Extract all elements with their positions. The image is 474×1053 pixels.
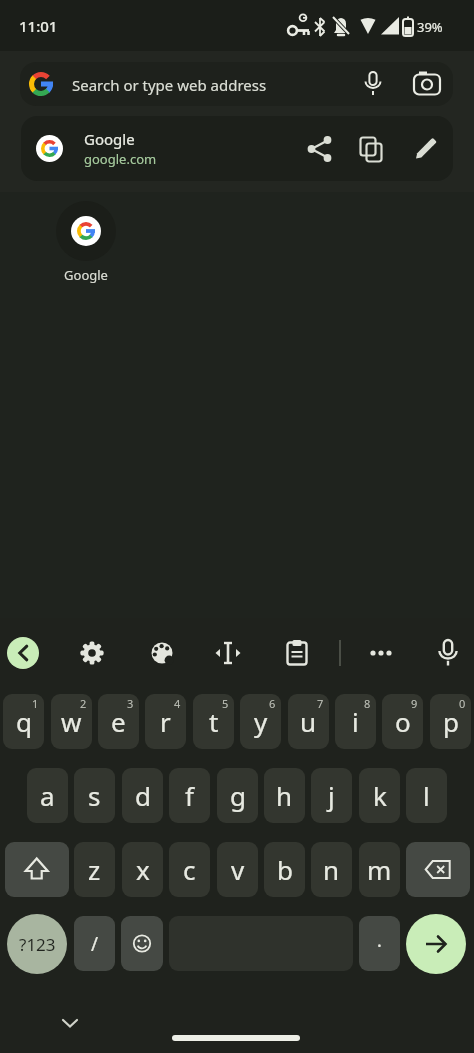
button[interactable]: z — [74, 842, 115, 897]
button[interactable]: x — [122, 842, 163, 897]
button[interactable]: b — [264, 842, 305, 897]
staticText: e — [111, 704, 126, 739]
staticText: s — [88, 778, 101, 813]
staticText: u — [300, 704, 317, 739]
staticText: c — [183, 852, 196, 887]
staticText: t — [209, 704, 219, 739]
staticText: n — [323, 852, 340, 887]
button[interactable]: Google — [21, 116, 453, 181]
staticText: 5 — [222, 696, 229, 711]
button[interactable]: y — [240, 694, 281, 749]
staticText: o — [395, 704, 411, 739]
button[interactable] — [406, 130, 444, 168]
staticText: 3 — [127, 696, 134, 711]
staticText: x — [136, 852, 150, 887]
button[interactable]: / — [74, 916, 115, 971]
button[interactable] — [56, 201, 116, 261]
button[interactable] — [407, 64, 447, 104]
button[interactable]: p — [430, 694, 471, 749]
staticText: Google — [46, 266, 126, 284]
button[interactable]: r — [145, 694, 186, 749]
button[interactable]: f — [169, 768, 210, 823]
staticText: 39% — [417, 18, 443, 36]
staticText: 1 — [32, 696, 39, 711]
button[interactable]: h — [264, 768, 305, 823]
button[interactable] — [208, 633, 248, 673]
staticText: y — [254, 704, 268, 739]
button[interactable]: g — [217, 768, 258, 823]
staticText: 9 — [411, 696, 418, 711]
staticText: w — [61, 704, 82, 739]
staticText: 2 — [80, 696, 87, 711]
button[interactable]: n — [311, 842, 352, 897]
staticText: ?123 — [19, 933, 56, 956]
button[interactable]: . — [359, 916, 400, 971]
staticText: j — [328, 778, 335, 813]
staticText: 11:01 — [19, 16, 58, 36]
staticText: 8 — [364, 696, 371, 711]
button[interactable]: Search or type web address — [20, 62, 453, 106]
button[interactable]: ?123 — [7, 914, 67, 974]
button[interactable]: v — [217, 842, 258, 897]
button[interactable] — [353, 64, 393, 104]
button[interactable]: o — [382, 694, 423, 749]
button[interactable] — [121, 916, 163, 971]
button[interactable]: d — [122, 768, 163, 823]
staticText: k — [373, 778, 387, 813]
button[interactable]: q — [3, 694, 44, 749]
button[interactable]: u — [288, 694, 329, 749]
staticText: b — [277, 852, 293, 887]
staticText: Google — [84, 129, 135, 149]
button[interactable] — [142, 633, 182, 673]
staticText: q — [16, 704, 32, 739]
staticText: l — [423, 778, 430, 813]
staticText: Search or type web address — [72, 75, 267, 95]
staticText: 7 — [317, 696, 324, 711]
staticText: a — [40, 778, 55, 813]
button[interactable] — [361, 633, 401, 673]
staticText: v — [231, 852, 245, 887]
staticText: h — [276, 778, 293, 813]
staticText: d — [135, 778, 151, 813]
button[interactable] — [406, 842, 470, 897]
button[interactable] — [277, 633, 317, 673]
staticText: / — [91, 931, 99, 957]
button[interactable]: e — [98, 694, 139, 749]
button[interactable] — [428, 633, 468, 673]
staticText: m — [367, 852, 392, 887]
staticText: 4 — [174, 696, 181, 711]
staticText: 0 — [459, 696, 466, 711]
button[interactable]: a — [27, 768, 68, 823]
button[interactable] — [7, 637, 39, 669]
button[interactable]: k — [359, 768, 400, 823]
button[interactable]: m — [359, 842, 400, 897]
button[interactable]: j — [311, 768, 352, 823]
button[interactable] — [72, 633, 112, 673]
staticText: g — [230, 778, 246, 813]
staticText: z — [88, 852, 101, 887]
button[interactable]: i — [335, 694, 376, 749]
staticText: google.com — [84, 150, 157, 168]
button[interactable]: s — [74, 768, 115, 823]
staticText: i — [352, 704, 359, 739]
staticText: r — [160, 704, 171, 739]
staticText: p — [443, 704, 459, 739]
button[interactable]: c — [169, 842, 210, 897]
button[interactable] — [300, 130, 338, 168]
staticText: . — [377, 928, 382, 953]
button[interactable] — [406, 914, 466, 974]
button[interactable] — [352, 130, 390, 168]
button[interactable]: t — [193, 694, 234, 749]
button[interactable] — [5, 842, 69, 897]
button[interactable]: w — [51, 694, 92, 749]
staticText: f — [185, 778, 194, 813]
staticText: 6 — [269, 696, 276, 711]
button[interactable]: l — [406, 768, 447, 823]
